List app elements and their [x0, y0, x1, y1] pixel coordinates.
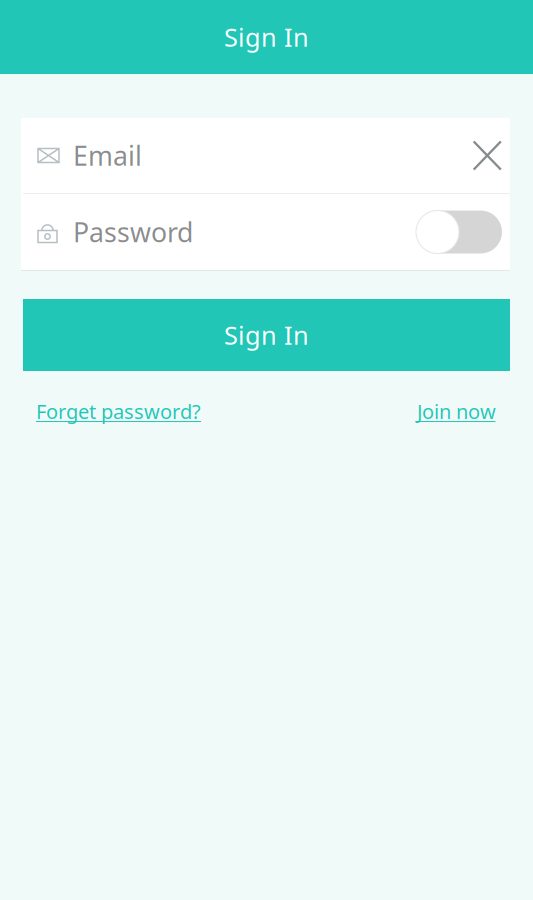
button[interactable]: Clear email	[460, 132, 502, 178]
staticText: Sign In	[224, 20, 309, 54]
button[interactable]: Email	[21, 118, 510, 193]
staticText: Password	[73, 214, 193, 250]
staticText: Forget password?	[36, 398, 201, 425]
button[interactable]: Join now	[417, 398, 496, 425]
button[interactable]: Show password	[416, 210, 502, 253]
staticText: Email	[73, 138, 142, 173]
staticText: Join now	[417, 398, 496, 425]
button[interactable]: Password	[21, 194, 510, 270]
button[interactable]: Forget password?	[36, 398, 201, 425]
staticText: Sign In	[224, 318, 309, 352]
button[interactable]: Sign In	[23, 299, 510, 371]
